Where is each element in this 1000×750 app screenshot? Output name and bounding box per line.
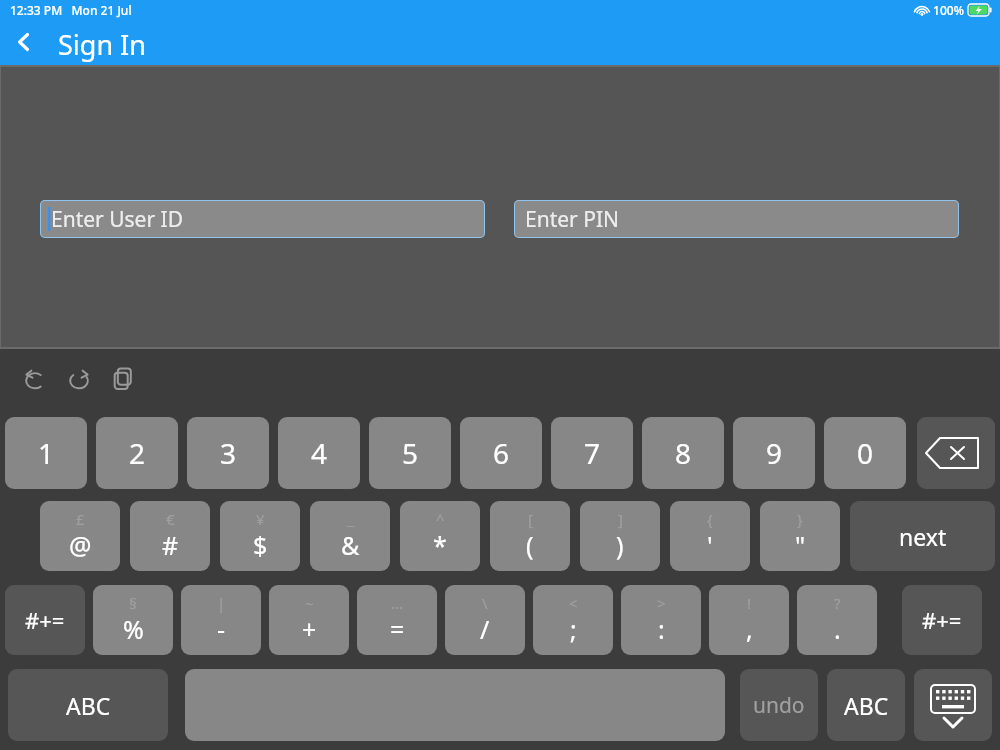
staticText: = <box>390 612 405 646</box>
staticText: ] <box>618 509 623 529</box>
button[interactable]: #+= <box>902 585 982 655</box>
staticText: < <box>569 593 578 613</box>
button[interactable]: … <box>357 585 437 655</box>
staticText: % <box>123 612 144 646</box>
staticText: ! <box>747 593 752 613</box>
button[interactable]: Hide keyboard <box>914 669 992 741</box>
staticText: ' <box>707 528 713 562</box>
staticText: > <box>657 593 666 613</box>
other: Wi-Fi <box>914 3 930 17</box>
button[interactable]: ¥ <box>220 501 300 571</box>
button[interactable]: 4 <box>278 417 360 489</box>
button[interactable]: \ <box>445 585 525 655</box>
button[interactable]: undo <box>740 669 818 741</box>
button[interactable]: | <box>181 585 261 655</box>
staticText: 0 <box>857 434 874 472</box>
staticText: ABC <box>844 690 889 721</box>
button[interactable]: Paste <box>102 358 144 400</box>
staticText: $ <box>253 528 268 562</box>
staticText: Sign In <box>58 26 146 63</box>
staticText: 8 <box>675 434 692 472</box>
button[interactable]: 8 <box>642 417 724 489</box>
button[interactable]: _ <box>310 501 390 571</box>
staticText: Enter PIN <box>525 205 619 234</box>
button[interactable]: 9 <box>733 417 815 489</box>
staticText: 6 <box>493 434 510 472</box>
staticText: _ <box>347 509 354 529</box>
staticText: 9 <box>766 434 783 472</box>
button[interactable]: 3 <box>187 417 269 489</box>
staticText: ^ <box>436 509 445 529</box>
button[interactable]: 2 <box>96 417 178 489</box>
staticText: 1 <box>38 434 55 472</box>
staticText: { <box>707 509 713 529</box>
button[interactable]: Back <box>0 20 48 64</box>
staticText: ( <box>526 528 534 562</box>
staticText: # <box>162 528 179 562</box>
staticText: § <box>129 593 137 613</box>
staticText: undo <box>753 691 805 720</box>
button[interactable]: ^ <box>400 501 480 571</box>
staticText: 7 <box>584 434 601 472</box>
button[interactable]: < <box>533 585 613 655</box>
button[interactable]: { <box>670 501 750 571</box>
button[interactable]: Enter User ID <box>40 200 485 238</box>
staticText: @ <box>69 528 92 562</box>
staticText: + <box>302 612 317 646</box>
button[interactable]: ABC <box>827 669 905 741</box>
button[interactable]: § <box>93 585 173 655</box>
button[interactable]: ! <box>709 585 789 655</box>
staticText: 100% <box>930 2 968 18</box>
staticText: £ <box>76 509 85 529</box>
button[interactable]: 6 <box>460 417 542 489</box>
staticText: ABC <box>66 690 111 721</box>
button[interactable]: ? <box>797 585 877 655</box>
staticText: : <box>658 612 665 646</box>
button[interactable]: 1 <box>5 417 87 489</box>
button[interactable]: } <box>760 501 840 571</box>
button[interactable]: 5 <box>369 417 451 489</box>
staticText: #+= <box>25 605 65 635</box>
staticText: ; <box>570 612 577 646</box>
button[interactable]: > <box>621 585 701 655</box>
staticText: " <box>795 528 806 562</box>
button[interactable]: € <box>130 501 210 571</box>
staticText: 12:33 PM Mon 21 Jul <box>10 2 132 18</box>
button[interactable]: Undo <box>14 358 56 400</box>
staticText: * <box>433 528 447 562</box>
staticText: 2 <box>129 434 146 472</box>
staticText: . <box>834 612 841 646</box>
button[interactable]: ] <box>580 501 660 571</box>
staticText: } <box>797 509 803 529</box>
button[interactable]: 0 <box>824 417 906 489</box>
staticText: | <box>217 593 226 613</box>
button[interactable]: Redo <box>58 358 100 400</box>
button[interactable]: #+= <box>5 585 85 655</box>
staticText: , <box>746 612 753 646</box>
button[interactable]: Enter PIN <box>514 200 959 238</box>
button[interactable]: [ <box>490 501 570 571</box>
staticText: next <box>899 521 947 552</box>
staticText: [ <box>528 509 533 529</box>
staticText: ) <box>616 528 624 562</box>
staticText: Enter User ID <box>51 205 184 234</box>
staticText: - <box>217 612 226 646</box>
button[interactable]: ~ <box>269 585 349 655</box>
button[interactable]: ABC <box>8 669 168 741</box>
button[interactable]: 7 <box>551 417 633 489</box>
staticText: 3 <box>220 434 237 472</box>
staticText: \ <box>482 593 488 613</box>
staticText: ? <box>834 593 841 613</box>
staticText: € <box>166 509 175 529</box>
staticText: / <box>480 612 490 646</box>
staticText: #+= <box>922 605 962 635</box>
button[interactable]: £ <box>40 501 120 571</box>
button[interactable]: Backspace <box>917 417 995 489</box>
staticText: 5 <box>402 434 419 472</box>
staticText: & <box>341 528 360 562</box>
staticText: ¥ <box>256 509 265 529</box>
staticText: … <box>391 593 403 613</box>
button[interactable]: next <box>850 501 995 571</box>
button[interactable]: Space <box>185 669 725 741</box>
staticText: 4 <box>311 434 328 472</box>
